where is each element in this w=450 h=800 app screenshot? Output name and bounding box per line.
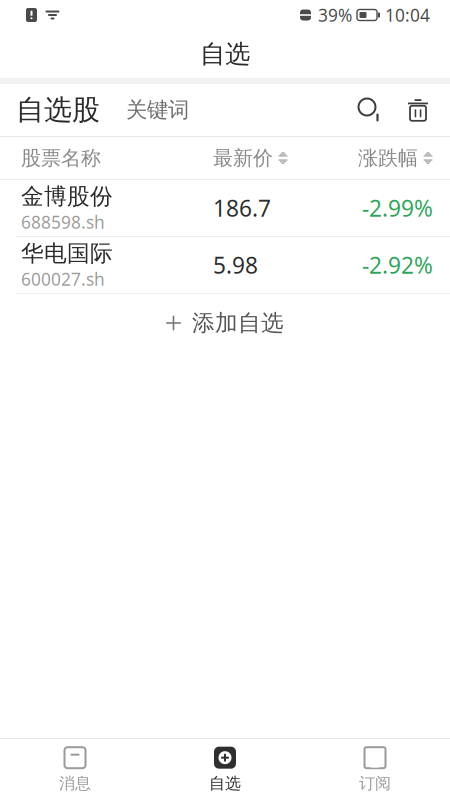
- button[interactable]: 消息: [0, 739, 150, 800]
- staticText: 39%: [318, 3, 352, 26]
- staticText: -2.99%: [362, 193, 433, 223]
- button[interactable]: 自选: [150, 739, 300, 800]
- staticText: 涨跌幅: [358, 146, 418, 170]
- staticText: 自选: [209, 774, 241, 793]
- button[interactable]: 添加自选: [0, 294, 450, 352]
- button[interactable]: 搜索: [346, 86, 394, 134]
- button[interactable]: 删除自选: [394, 86, 442, 134]
- staticText: 10:04: [385, 3, 430, 26]
- staticText: 自选股: [16, 93, 100, 127]
- staticText: 688598.sh: [21, 210, 105, 233]
- staticText: 最新价: [213, 146, 273, 170]
- staticText: 自选: [200, 38, 250, 69]
- staticText: 股票名称: [21, 146, 101, 170]
- button[interactable]: 订阅: [300, 739, 450, 800]
- button[interactable]: 华电国际: [5, 237, 445, 293]
- staticText: 华电国际: [21, 240, 113, 267]
- button[interactable]: 最新价: [213, 146, 323, 170]
- staticText: 金博股份: [21, 183, 113, 210]
- button[interactable]: 涨跌幅: [323, 146, 433, 170]
- button[interactable]: 关键词: [100, 89, 189, 131]
- button[interactable]: 金博股份: [5, 180, 445, 236]
- staticText: 订阅: [359, 774, 391, 793]
- staticText: -2.92%: [362, 250, 433, 280]
- staticText: 添加自选: [192, 309, 284, 337]
- staticText: 关键词: [126, 97, 189, 123]
- staticText: 186.7: [213, 193, 271, 223]
- staticText: 600027.sh: [21, 267, 105, 290]
- staticText: 消息: [59, 774, 91, 793]
- staticText: 5.98: [213, 250, 258, 280]
